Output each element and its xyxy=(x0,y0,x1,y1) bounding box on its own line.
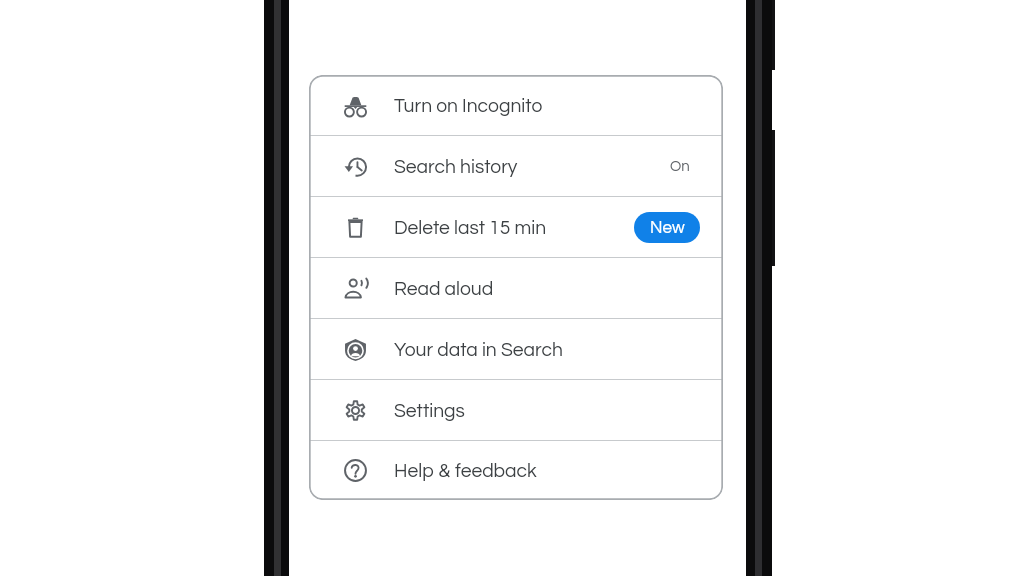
staticText: Your data in Search xyxy=(394,340,563,360)
staticText: On xyxy=(670,159,690,174)
staticText: Read aloud xyxy=(394,279,494,299)
button[interactable]: Your data in Search xyxy=(309,319,723,380)
staticText: Settings xyxy=(394,401,465,421)
button[interactable]: Help & feedback xyxy=(309,441,723,500)
staticText: Delete last 15 min xyxy=(394,218,547,238)
button[interactable]: New feature badge xyxy=(634,212,700,243)
staticText: New xyxy=(650,219,685,237)
staticText: Search history xyxy=(394,157,518,177)
button[interactable]: Read aloud xyxy=(309,258,723,319)
button[interactable]: Delete last 15 min xyxy=(309,197,723,258)
staticText: Turn on Incognito xyxy=(394,96,543,116)
button[interactable]: Turn on Incognito xyxy=(309,75,723,136)
staticText: Help & feedback xyxy=(394,459,537,483)
button[interactable]: Settings xyxy=(309,380,723,441)
button[interactable]: Search history xyxy=(309,136,723,197)
